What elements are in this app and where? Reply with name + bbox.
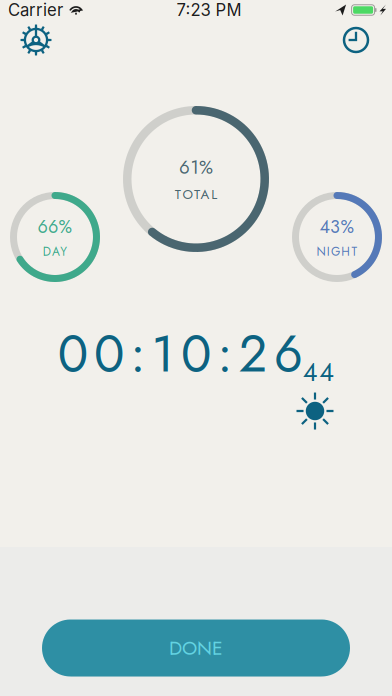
- staticText: 00:10:26: [58, 317, 303, 391]
- button[interactable]: DONE: [42, 619, 350, 676]
- staticText: DAY: [43, 243, 67, 260]
- button[interactable]: Daylight mode: [291, 387, 338, 434]
- staticText: DONE: [169, 634, 223, 662]
- staticText: TOTAL: [175, 185, 217, 204]
- staticText: NIGHT: [316, 243, 358, 260]
- staticText: Carrier: [8, 0, 63, 20]
- button[interactable]: History: [338, 22, 374, 58]
- staticText: 43%: [320, 214, 354, 240]
- staticText: 7:23 PM: [177, 0, 242, 20]
- staticText: 66%: [38, 214, 72, 240]
- button[interactable]: Settings: [17, 21, 54, 58]
- staticText: 44: [303, 354, 334, 391]
- staticText: 61%: [179, 154, 213, 181]
